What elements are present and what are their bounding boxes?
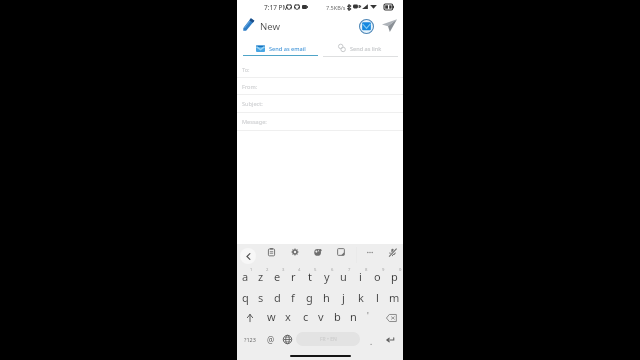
button[interactable]: Clipboard xyxy=(263,244,279,260)
staticText: f xyxy=(291,290,295,305)
staticText: d xyxy=(274,290,281,305)
staticText: s xyxy=(258,290,264,305)
staticText: k xyxy=(358,290,364,305)
button[interactable]: Back xyxy=(240,248,256,264)
button[interactable]: w xyxy=(263,308,279,324)
staticText: ?123 xyxy=(244,336,256,343)
button[interactable]: o xyxy=(369,266,386,287)
staticText: 5 xyxy=(314,267,317,273)
staticText: 9 xyxy=(382,267,385,273)
button[interactable]: d xyxy=(269,287,285,308)
staticText: p xyxy=(391,269,398,284)
button[interactable]: m xyxy=(386,287,403,308)
button[interactable]: l xyxy=(369,287,386,308)
staticText: 7.5KB/s xyxy=(326,4,346,11)
button[interactable]: h xyxy=(318,287,335,308)
staticText: 2 xyxy=(266,267,269,273)
button[interactable]: Edit xyxy=(240,15,258,33)
staticText: ' xyxy=(367,310,369,321)
staticText: h xyxy=(323,290,330,305)
staticText: z xyxy=(258,269,264,284)
button[interactable]: s xyxy=(253,287,269,308)
button[interactable]: k xyxy=(352,287,369,308)
staticText: Send as email xyxy=(269,45,306,53)
staticText: @ xyxy=(267,334,275,345)
staticText: 6 xyxy=(331,267,334,273)
button[interactable]: u xyxy=(335,266,352,287)
button[interactable]: More options xyxy=(362,244,378,260)
staticText: m xyxy=(389,290,400,305)
staticText: o xyxy=(374,269,381,284)
staticText: a xyxy=(242,269,249,284)
button[interactable]: y xyxy=(318,266,335,287)
staticText: l xyxy=(376,290,379,305)
button[interactable]: Change language xyxy=(278,329,296,350)
button[interactable]: p xyxy=(386,266,403,287)
button[interactable]: v xyxy=(313,308,329,324)
staticText: n xyxy=(350,309,357,324)
button[interactable]: Send as email xyxy=(356,16,376,36)
button[interactable]: Send as email xyxy=(243,40,317,56)
staticText: u xyxy=(340,269,347,284)
button[interactable]: @ xyxy=(262,329,280,350)
staticText: c xyxy=(303,309,309,324)
button[interactable]: ?123 xyxy=(240,329,260,350)
staticText: e xyxy=(274,269,281,284)
staticText: Send as link xyxy=(350,45,382,53)
staticText: 8 xyxy=(365,267,368,273)
staticText: q xyxy=(242,290,249,305)
button[interactable]: Send as link xyxy=(322,40,397,56)
button[interactable]: x xyxy=(280,308,296,324)
button[interactable]: r xyxy=(285,266,301,287)
button[interactable]: Enter xyxy=(380,329,400,350)
staticText: Subject: xyxy=(242,100,263,108)
button[interactable]: Theme xyxy=(310,244,326,260)
button[interactable]: g xyxy=(301,287,318,308)
button[interactable]: c xyxy=(298,308,314,324)
button[interactable]: Mute microphone xyxy=(384,244,400,260)
staticText: t xyxy=(308,269,312,284)
staticText: 7 xyxy=(348,267,351,273)
staticText: x xyxy=(285,309,291,324)
button[interactable]: Shift xyxy=(240,308,260,328)
button[interactable]: n xyxy=(345,308,361,324)
staticText: From: xyxy=(242,83,258,91)
staticText: y xyxy=(324,269,330,284)
staticText: . xyxy=(370,336,373,347)
staticText: 0 xyxy=(399,267,402,273)
button[interactable]: e xyxy=(269,266,285,287)
staticText: Message: xyxy=(242,118,267,126)
staticText: 4 xyxy=(298,267,301,273)
staticText: b xyxy=(334,309,341,324)
button[interactable]: j xyxy=(335,287,352,308)
staticText: 1 xyxy=(250,267,253,273)
staticText: g xyxy=(306,290,313,305)
button[interactable]: i xyxy=(352,266,369,287)
button[interactable]: a xyxy=(237,266,253,287)
button[interactable]: ' xyxy=(360,308,376,324)
button[interactable]: t xyxy=(301,266,318,287)
button[interactable]: . xyxy=(363,329,379,350)
button[interactable]: f xyxy=(285,287,301,308)
button[interactable]: FR • EN xyxy=(296,332,360,346)
button[interactable]: Backspace xyxy=(381,308,401,328)
staticText: r xyxy=(291,269,296,284)
button[interactable]: Send xyxy=(379,15,399,35)
button[interactable]: z xyxy=(253,266,269,287)
button[interactable]: q xyxy=(237,287,253,308)
button[interactable]: b xyxy=(329,308,345,324)
button[interactable]: Settings xyxy=(287,244,303,260)
staticText: To: xyxy=(242,66,250,74)
staticText: 7:17 PM xyxy=(264,3,289,12)
staticText: v xyxy=(318,309,324,324)
staticText: 3 xyxy=(282,267,285,273)
staticText: i xyxy=(359,269,362,284)
staticText: w xyxy=(267,309,276,324)
staticText: New xyxy=(260,20,281,33)
staticText: FR • EN xyxy=(320,336,337,343)
staticText: j xyxy=(342,290,345,305)
button[interactable]: Stickers xyxy=(333,244,349,260)
